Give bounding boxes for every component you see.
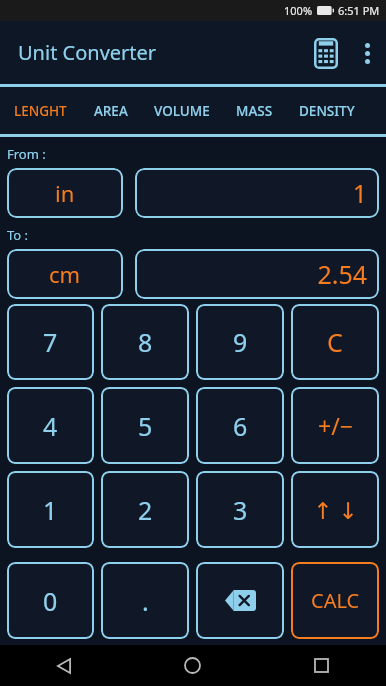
staticText: LENGHT (14, 102, 67, 120)
staticText: 6:51 PM (338, 3, 380, 18)
button[interactable]: 2.54 (135, 249, 379, 299)
staticText: cm (49, 259, 81, 289)
button[interactable]: +/− (291, 387, 379, 464)
staticText: 1 (43, 493, 58, 527)
button[interactable]: 5 (101, 387, 189, 464)
staticText: Unit Converter (18, 39, 157, 66)
button[interactable]: Calculator (304, 31, 348, 75)
staticText: 1 (352, 176, 367, 210)
staticText: VOLUME (154, 102, 210, 120)
button[interactable]: Backspace (196, 562, 284, 639)
button[interactable]: 1 (135, 168, 379, 218)
button[interactable]: ↑ ↓ (291, 471, 379, 548)
button[interactable]: 1 (7, 471, 94, 548)
button[interactable]: MASS (223, 87, 286, 134)
button[interactable]: 0 (7, 562, 94, 639)
button[interactable]: Recents (257, 645, 386, 686)
staticText: C (327, 325, 343, 359)
button[interactable]: C (291, 304, 379, 380)
staticText: DENSITY (299, 102, 355, 120)
button[interactable]: 3 (196, 471, 284, 548)
staticText: 0 (43, 584, 58, 618)
button[interactable]: 9 (196, 304, 284, 380)
button[interactable]: 6 (196, 387, 284, 464)
staticText: 2 (138, 493, 153, 527)
button[interactable]: in (7, 168, 123, 218)
staticText: 3 (233, 493, 248, 527)
staticText: From : (7, 145, 46, 163)
staticText: 9 (233, 325, 248, 359)
button[interactable]: 4 (7, 387, 94, 464)
button[interactable]: cm (7, 249, 123, 299)
button[interactable]: . (101, 562, 189, 639)
button[interactable]: CALC (291, 562, 379, 639)
button[interactable]: AREA (81, 87, 141, 134)
staticText: 6 (233, 409, 248, 443)
button[interactable]: 2 (101, 471, 189, 548)
staticText: CALC (311, 587, 360, 614)
staticText: 8 (138, 325, 153, 359)
staticText: 4 (43, 409, 58, 443)
button[interactable]: 7 (7, 304, 94, 380)
button[interactable]: 8 (101, 304, 189, 380)
staticText: 100% (284, 3, 313, 18)
button[interactable]: Home (128, 645, 257, 686)
staticText: 7 (43, 325, 58, 359)
staticText: MASS (236, 102, 273, 120)
button[interactable]: VOLUME (141, 87, 223, 134)
staticText: AREA (94, 102, 128, 120)
button[interactable]: LENGHT (0, 87, 81, 134)
button[interactable]: DENSITY (286, 87, 368, 134)
button[interactable]: More options (348, 31, 386, 75)
staticText: . (142, 584, 149, 618)
staticText: ↑ ↓ (313, 494, 358, 525)
staticText: +/− (318, 410, 353, 441)
staticText: in (55, 178, 75, 208)
staticText: 2.54 (317, 257, 367, 291)
staticText: 5 (138, 409, 153, 443)
button[interactable]: Back (0, 645, 128, 686)
staticText: To : (7, 226, 29, 244)
